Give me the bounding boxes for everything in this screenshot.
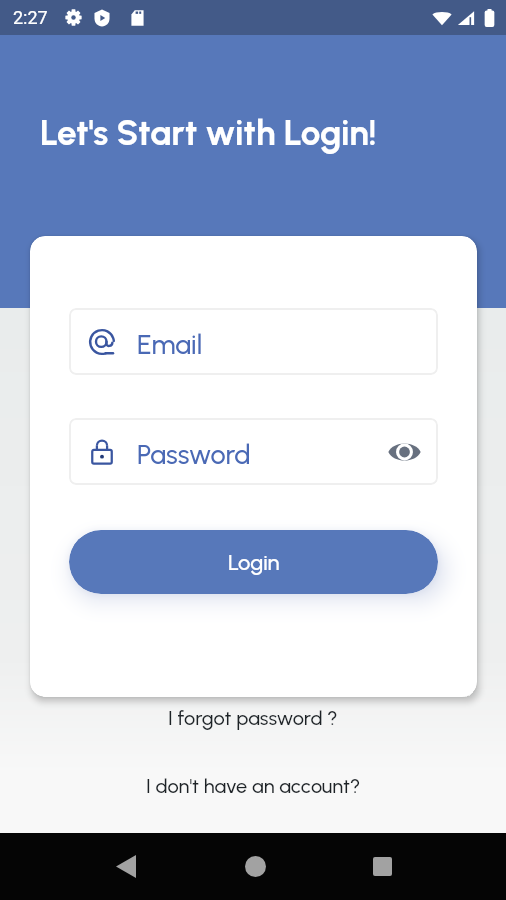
staticText: I forgot password ? <box>168 706 338 730</box>
staticText: I don't have an account? <box>146 774 361 798</box>
button[interactable]: I forgot password ? <box>156 700 350 736</box>
staticText: Password <box>137 438 251 470</box>
staticText: Login <box>228 549 280 575</box>
staticText: Email <box>137 328 203 360</box>
button[interactable]: Email <box>69 308 438 375</box>
button[interactable]: Back <box>98 833 154 900</box>
staticText: 2:27 <box>13 7 48 28</box>
button[interactable]: Home <box>227 833 283 900</box>
button[interactable]: I don't have an account? <box>134 768 373 804</box>
button[interactable]: Password <box>69 418 438 485</box>
button[interactable]: Login <box>69 530 438 594</box>
staticText: Let's Start with Login! <box>40 112 377 154</box>
button[interactable]: Show password <box>386 434 422 470</box>
button[interactable]: Recents <box>354 833 410 900</box>
